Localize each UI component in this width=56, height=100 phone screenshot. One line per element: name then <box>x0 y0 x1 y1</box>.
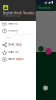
staticText: Translate <box>38 6 51 10</box>
button[interactable]: History <box>0 0 36 34</box>
staticText: History <box>8 29 17 32</box>
staticText: Share App <box>8 43 22 46</box>
staticText: Favorite <box>8 22 18 25</box>
staticText: More Apps <box>8 57 23 61</box>
staticText: Rate us <box>8 50 18 54</box>
button[interactable]: Favorite <box>0 0 36 27</box>
staticText: English Hindi Translator <box>3 11 36 15</box>
staticText: OTHER <box>6 37 11 39</box>
button[interactable]: Rate us <box>0 0 36 55</box>
button[interactable]: More Apps <box>0 0 36 62</box>
staticText: com.hindi.english.translator <box>3 15 21 17</box>
button[interactable]: Share App <box>0 0 36 48</box>
